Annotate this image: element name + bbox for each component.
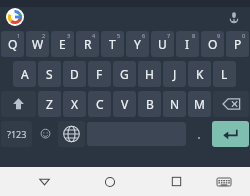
button[interactable]: Shift	[1, 91, 36, 117]
staticText: R	[84, 36, 92, 52]
button[interactable]: P	[226, 31, 249, 57]
staticText: A	[21, 66, 29, 82]
button[interactable]: S	[38, 61, 61, 87]
staticText: Q	[8, 36, 18, 52]
button[interactable]: H	[138, 61, 161, 87]
button[interactable]: I	[176, 31, 199, 57]
button[interactable]: ?123	[1, 121, 32, 147]
button[interactable]: D	[63, 61, 86, 87]
button[interactable]: R	[76, 31, 99, 57]
staticText: I	[185, 36, 190, 52]
staticText: V	[121, 96, 129, 112]
staticText: G	[120, 66, 129, 82]
staticText: D	[70, 66, 79, 82]
button[interactable]: Emoji	[33, 119, 57, 149]
button[interactable]: Google	[6, 8, 24, 26]
staticText: Z	[46, 96, 53, 112]
button[interactable]: N	[163, 91, 186, 117]
button[interactable]: V	[113, 91, 136, 117]
button[interactable]: Backspace	[213, 91, 249, 117]
staticText: K	[196, 66, 204, 82]
staticText: 4	[92, 32, 96, 39]
staticText: 7	[167, 32, 171, 39]
staticText: Y	[134, 36, 141, 52]
button[interactable]: K	[188, 61, 211, 87]
staticText: U	[158, 36, 167, 52]
button[interactable]: T	[101, 31, 124, 57]
staticText: T	[109, 36, 116, 52]
staticText: P	[234, 36, 242, 52]
button[interactable]: O	[201, 31, 224, 57]
button[interactable]: G	[113, 61, 136, 87]
staticText: 6	[142, 32, 146, 39]
staticText: ?123	[7, 128, 27, 140]
staticText: L	[221, 66, 228, 82]
staticText: 0	[242, 32, 246, 39]
button[interactable]: U	[151, 31, 174, 57]
button[interactable]: C	[88, 91, 111, 117]
button[interactable]: W	[26, 31, 49, 57]
staticText: 8	[192, 32, 196, 39]
button[interactable]: Q	[1, 31, 24, 57]
staticText: H	[145, 66, 154, 82]
button[interactable]: A	[13, 61, 36, 87]
staticText: 2	[42, 32, 46, 39]
staticText: W	[32, 36, 44, 52]
button[interactable]: F	[88, 61, 111, 87]
button[interactable]: Back	[27, 167, 61, 196]
button[interactable]: L	[213, 61, 236, 87]
staticText: N	[170, 96, 180, 112]
button[interactable]: Home	[93, 167, 127, 196]
button[interactable]: Voice input	[226, 9, 242, 25]
button[interactable]: Z	[38, 91, 61, 117]
button[interactable]: Y	[126, 31, 149, 57]
staticText: 5	[117, 32, 121, 39]
button[interactable]: B	[138, 91, 161, 117]
staticText: 9	[217, 32, 221, 39]
staticText: S	[46, 66, 53, 82]
staticText: F	[96, 66, 103, 82]
button[interactable]: Enter	[212, 121, 249, 147]
staticText: B	[146, 96, 154, 112]
staticText: C	[96, 96, 104, 112]
staticText: O	[208, 36, 218, 52]
staticText: X	[71, 96, 79, 112]
button[interactable]: M	[188, 91, 211, 117]
button[interactable]: E	[51, 31, 74, 57]
button[interactable]: Period	[187, 119, 211, 149]
button[interactable]: X	[63, 91, 86, 117]
staticText: 3	[67, 32, 71, 39]
staticText: M	[194, 96, 205, 112]
button[interactable]: Switch keyboard	[207, 167, 241, 196]
button[interactable]: Change keyboard language	[58, 121, 85, 147]
staticText: 1	[17, 32, 21, 39]
staticText: E	[59, 36, 66, 52]
button[interactable]: J	[163, 61, 186, 87]
button[interactable]: Recent apps	[159, 167, 193, 196]
staticText: J	[173, 66, 177, 82]
